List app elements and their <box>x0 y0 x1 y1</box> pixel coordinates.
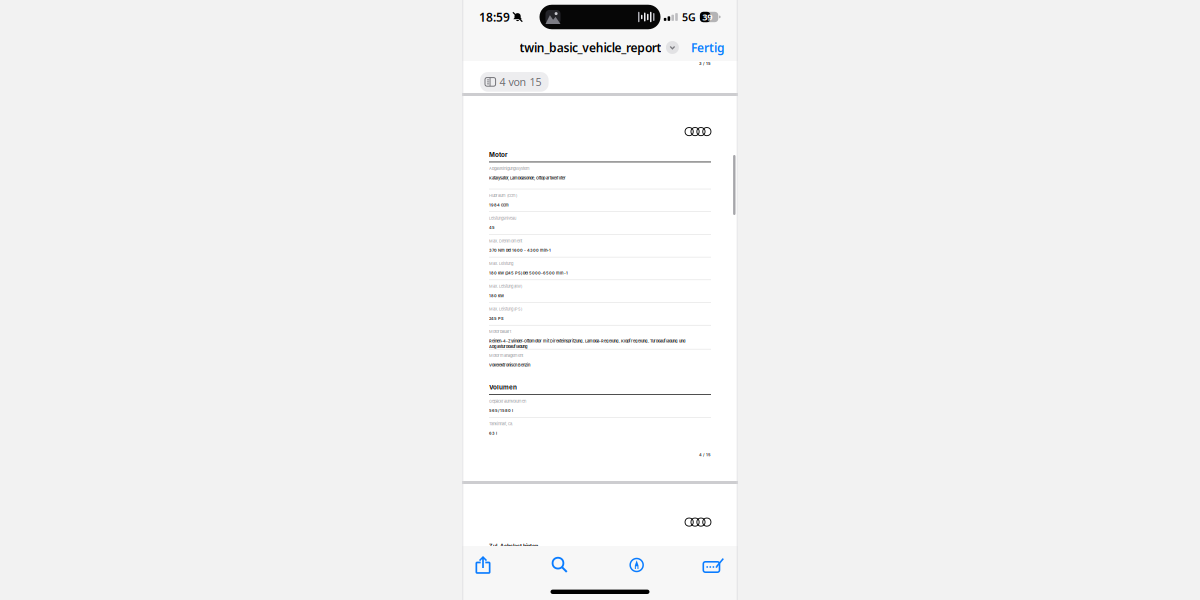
button[interactable]: Fertig <box>686 34 730 60</box>
button[interactable]: Share <box>462 552 503 578</box>
staticText: 5G <box>682 10 696 24</box>
staticText: Hubraum (ccm) <box>489 193 517 198</box>
staticText: 180 kW (245 PS) bei 5000-6500 min -1 <box>489 271 568 275</box>
staticText: 565/1580 l <box>489 408 513 413</box>
staticText: Reihen-4-Zylinder-Ottomotor mit Direktei… <box>489 339 685 343</box>
staticText: Abgasturboaufladung <box>489 344 528 349</box>
staticText: 3 / 15 <box>699 61 711 66</box>
staticText: Leistungsniveau <box>489 216 516 221</box>
button[interactable]: Markup <box>616 552 657 578</box>
staticText: 180 kW <box>489 293 504 298</box>
button[interactable]: Fill and Sign <box>693 552 734 578</box>
staticText: Fertig <box>691 39 725 55</box>
staticText: Volumen <box>489 383 517 391</box>
staticText: Tankinhalt, ca. <box>489 421 513 426</box>
staticText: 370 Nm bei 1600 - 4300 min-1 <box>489 248 551 253</box>
staticText: 4 / 15 <box>699 452 711 457</box>
staticText: Max. Leistung <box>489 261 513 266</box>
staticText: twin_basic_vehicle_report <box>520 39 661 55</box>
staticText: Katalysator, Lambdasonde, Ottopartikelfi… <box>489 176 566 180</box>
staticText: 18:59 <box>479 9 510 25</box>
button[interactable]: Document options <box>664 36 680 58</box>
staticText: 4 von 15 <box>500 75 542 89</box>
staticText: 45 <box>489 225 495 230</box>
staticText: Vollelektronisch Benzin <box>489 362 530 367</box>
staticText: Motor <box>489 151 508 158</box>
staticText: Max. Leistung (PS) <box>489 307 522 311</box>
staticText: 245 PS <box>489 316 504 321</box>
staticText: Max. Leistung (kW) <box>489 284 522 289</box>
staticText: Abgasreinigungssystem <box>489 166 530 171</box>
staticText: Gepäckraumvolumen <box>489 399 526 404</box>
staticText: 39 <box>702 11 712 23</box>
staticText: Motormanagement <box>489 353 523 358</box>
staticText: Motorbauart <box>489 329 511 334</box>
staticText: 1984 ccm <box>489 202 509 207</box>
staticText: Zul. Achslast hinten <box>489 542 538 549</box>
staticText: 63 l <box>489 431 497 436</box>
staticText: Max. Drehmoment <box>489 238 522 243</box>
button[interactable]: Search <box>539 552 580 578</box>
